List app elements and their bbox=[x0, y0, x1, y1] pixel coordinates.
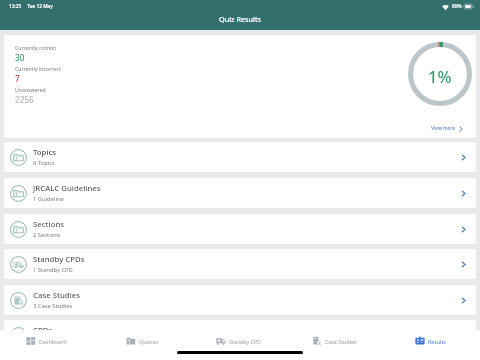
button[interactable]: Dashboard bbox=[0, 333, 96, 349]
staticText: 1% bbox=[428, 65, 452, 87]
button[interactable]: Topics bbox=[4, 142, 476, 172]
staticText: JRCALC Guidelines bbox=[33, 183, 101, 194]
staticText: 1 Standby CPD bbox=[33, 266, 73, 274]
staticText: Quizzes bbox=[139, 338, 159, 345]
button[interactable]: Case Studies bbox=[4, 285, 476, 315]
button[interactable]: CPDs bbox=[4, 320, 476, 350]
staticText: 0 Topics bbox=[33, 159, 55, 167]
staticText: CPDs bbox=[33, 325, 53, 336]
button[interactable]: Standby CPDs bbox=[4, 249, 476, 279]
staticText: 30 bbox=[15, 52, 25, 63]
staticText: 2 Sections bbox=[33, 231, 61, 239]
button[interactable]: View more bbox=[428, 123, 467, 134]
staticText: Case Studies bbox=[33, 290, 81, 301]
button[interactable]: JRCALC Guidelines bbox=[4, 178, 476, 208]
button[interactable]: Standby CPD bbox=[192, 333, 288, 349]
staticText: Dashboard bbox=[39, 338, 67, 345]
staticText: Quiz Results bbox=[219, 14, 262, 24]
staticText: Case Studies bbox=[325, 338, 357, 345]
staticText: 7 bbox=[15, 73, 20, 84]
button[interactable]: Quizzes bbox=[96, 333, 192, 349]
button[interactable]: Results bbox=[384, 333, 480, 349]
staticText: Tue 12 May bbox=[27, 3, 53, 10]
staticText: Unanswered bbox=[15, 86, 46, 93]
staticText: Results bbox=[428, 338, 446, 345]
staticText: 3 Case Studies bbox=[33, 302, 73, 310]
staticText: Currently correct bbox=[15, 44, 57, 51]
staticText: 2 CPDs bbox=[33, 337, 53, 345]
staticText: View more bbox=[431, 125, 456, 132]
staticText: Sections bbox=[33, 219, 65, 230]
button[interactable]: Sections bbox=[4, 214, 476, 244]
staticText: Standby CPDs bbox=[33, 254, 85, 265]
staticText: Topics bbox=[33, 147, 57, 158]
staticText: 1 Guideline bbox=[33, 195, 64, 203]
staticText: 2256 bbox=[15, 94, 34, 105]
staticText: 13:25 bbox=[9, 3, 22, 10]
button[interactable]: Case Studies bbox=[288, 333, 384, 349]
staticText: Currently incorrect bbox=[15, 65, 61, 72]
staticText: 80% bbox=[452, 3, 462, 10]
staticText: Standby CPD bbox=[229, 338, 261, 345]
